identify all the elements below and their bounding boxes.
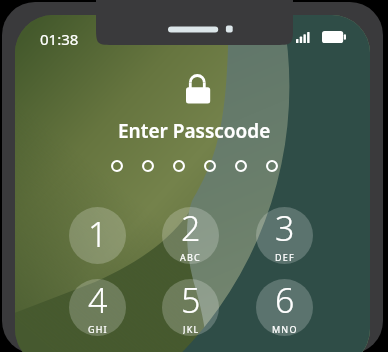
staticText: 5: [181, 279, 201, 323]
staticText: 01:38: [40, 29, 79, 49]
staticText: DEF: [275, 251, 295, 262]
staticText: JKL: [183, 323, 200, 334]
button[interactable]: 4: [69, 279, 126, 336]
button[interactable]: 6: [256, 279, 313, 336]
staticText: 6: [275, 279, 295, 323]
button[interactable]: 2: [162, 207, 219, 264]
staticText: 4: [88, 279, 108, 323]
staticText: 2: [181, 207, 201, 251]
staticText: Enter Passcoode: [118, 118, 271, 144]
other: Locked: [184, 72, 212, 106]
staticText: ABC: [180, 251, 201, 262]
staticText: GHI: [88, 323, 108, 334]
staticText: MNO: [272, 323, 298, 334]
button[interactable]: 5: [162, 279, 219, 336]
button[interactable]: 3: [256, 207, 313, 264]
button[interactable]: 1: [69, 207, 126, 264]
staticText: 1: [88, 211, 108, 257]
staticText: 3: [275, 207, 295, 251]
